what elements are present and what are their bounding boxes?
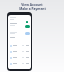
button[interactable] [10,44,29,47]
staticText: View Account [21,3,43,7]
button[interactable] [25,25,30,28]
button[interactable] [25,32,30,35]
button[interactable] [10,50,29,53]
button[interactable] [10,62,29,65]
button[interactable]: Account status [26,21,28,23]
staticText: Make a Payment [19,7,46,11]
button[interactable] [10,56,29,59]
